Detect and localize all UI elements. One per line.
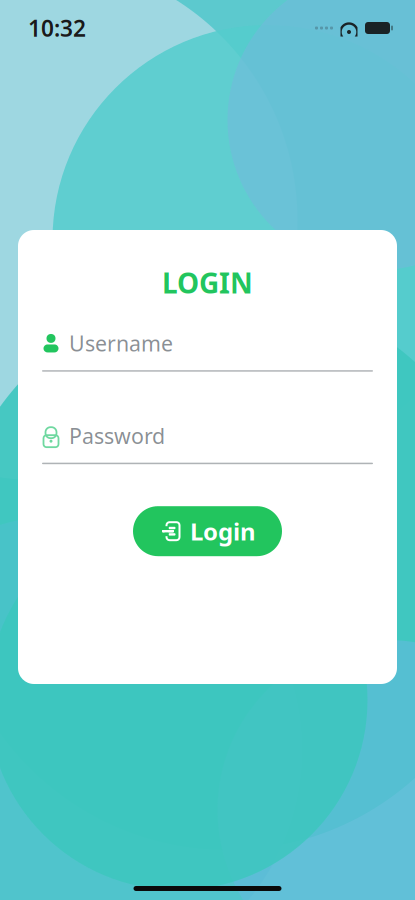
staticText: LOGIN — [162, 264, 253, 301]
staticText: Password — [69, 421, 165, 450]
staticText: 10:32 — [28, 13, 86, 43]
staticText: Username — [69, 329, 173, 357]
button[interactable]: Login — [133, 506, 282, 556]
staticText: Login — [190, 515, 256, 547]
